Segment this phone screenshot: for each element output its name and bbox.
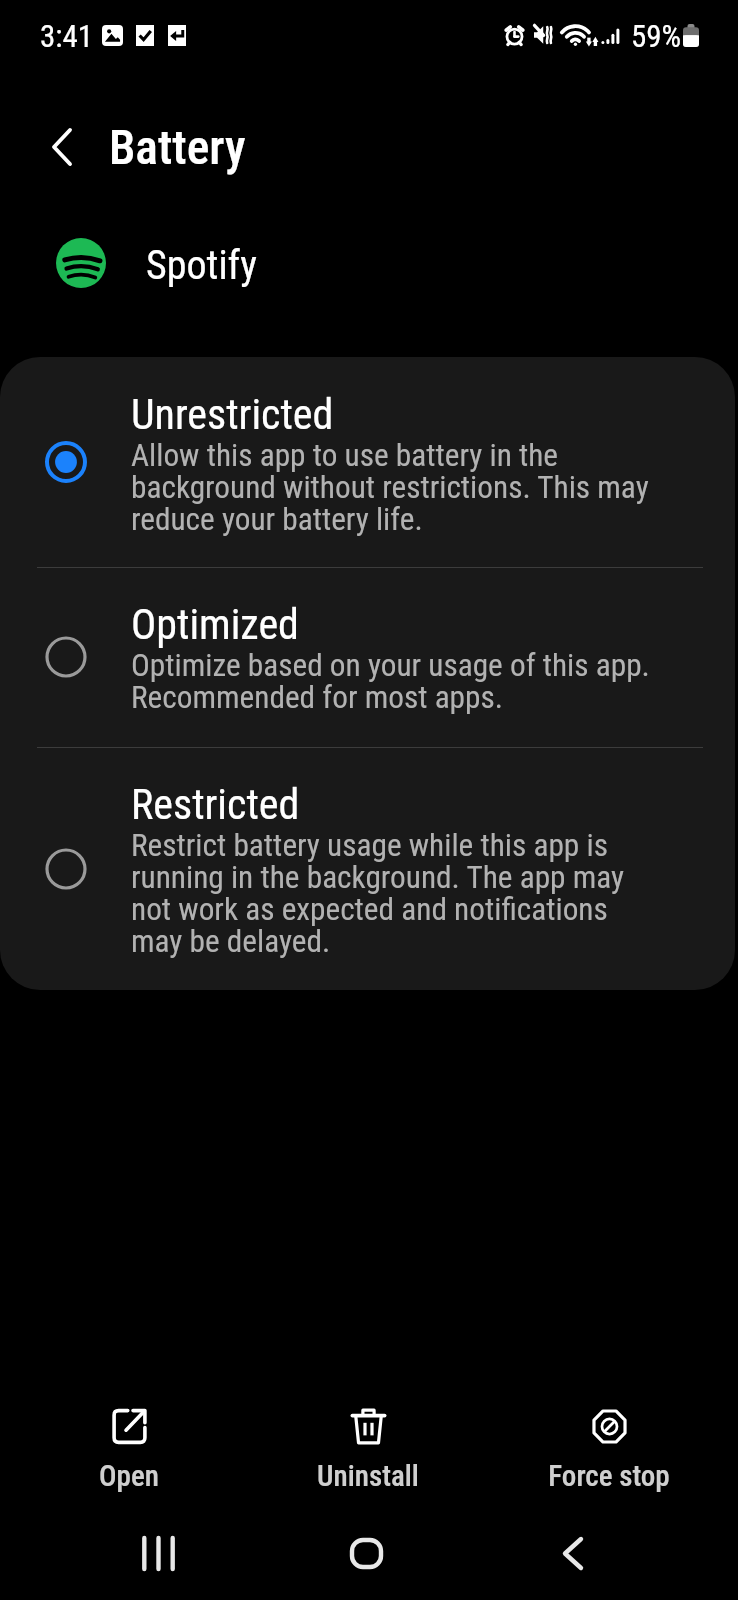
button[interactable]: Restricted [0,747,735,990]
staticText: Optimize based on your usage of this app… [131,647,657,716]
staticText: Open [99,1459,159,1493]
button[interactable]: Back [483,1506,663,1600]
button[interactable]: Uninstall [268,1398,468,1503]
staticText: 3:41 [40,18,94,54]
staticText: Battery [109,120,246,176]
button[interactable]: Back [37,112,87,182]
staticText: Spotify [146,242,257,289]
staticText: Restrict battery usage while this app is… [131,827,657,960]
button[interactable]: Open [29,1398,229,1503]
button[interactable]: Spotify [0,206,738,318]
staticText: Uninstall [317,1459,419,1493]
button[interactable]: Force stop [509,1398,709,1503]
staticText: Unrestricted [131,390,334,439]
button[interactable]: Recents [68,1506,248,1600]
button[interactable]: Unrestricted [0,357,735,567]
button[interactable]: Optimized [0,567,735,747]
button[interactable]: Home [276,1506,456,1600]
staticText: Restricted [131,780,300,829]
staticText: 59% [631,18,682,54]
staticText: Optimized [131,600,299,649]
staticText: Force stop [548,1459,670,1493]
staticText: Allow this app to use battery in the bac… [131,437,657,538]
